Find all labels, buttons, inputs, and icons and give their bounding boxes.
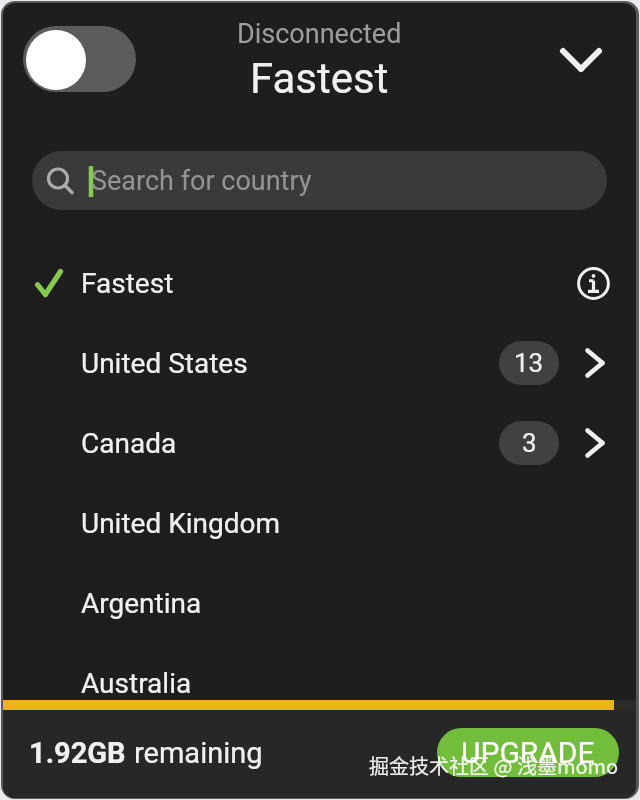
staticText: United Kingdom [81,507,281,540]
staticText: 13 [514,348,544,378]
button[interactable]: UPGRADE [437,728,619,777]
staticText: UPGRADE [461,735,595,770]
button[interactable]: Argentina [3,563,636,643]
staticText: Fastest [81,267,174,300]
staticText: Australia [81,667,192,700]
button[interactable]: Search for country [32,151,607,210]
staticText: Fastest [250,54,389,103]
button[interactable]: Canada [3,403,636,483]
staticText: remaining [134,736,263,770]
staticText: 3 [522,428,537,458]
button[interactable]: Open Canada [573,421,617,465]
button[interactable]: United Kingdom [3,483,636,563]
staticText: Argentina [81,587,202,620]
staticText: 掘金技术社区 @ 浅墨momo [369,751,619,780]
button[interactable]: Info [571,261,615,305]
button[interactable]: Fastest [3,243,636,323]
button[interactable]: United States [3,323,636,403]
staticText: Disconnected [237,18,402,50]
staticText: United States [81,347,248,380]
staticText: Search for country [91,165,312,197]
button[interactable]: Expand server list [550,29,612,91]
staticText: 1.92GB [29,736,126,770]
staticText: Canada [81,427,177,460]
button[interactable]: Connection toggle [23,26,136,92]
button[interactable]: Australia [3,643,636,723]
button[interactable]: Open United States [573,341,617,385]
